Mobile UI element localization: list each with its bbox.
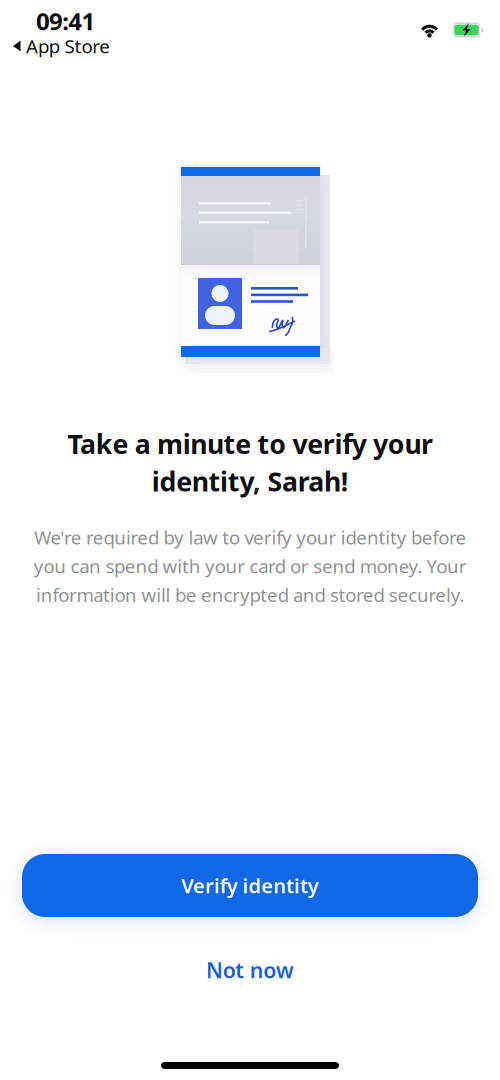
staticText: 09:41 <box>36 5 95 37</box>
staticText: We're required by law to verify your ide… <box>33 525 466 607</box>
staticText: Not now <box>206 956 294 984</box>
button[interactable]: Not now <box>22 948 478 992</box>
staticText: Take a minute to verify your identity, S… <box>67 426 433 499</box>
staticText: Verify identity <box>181 872 319 899</box>
staticText: App Store <box>26 34 110 58</box>
button[interactable]: Verify identity <box>22 854 478 917</box>
button[interactable]: App Store <box>0 38 500 60</box>
